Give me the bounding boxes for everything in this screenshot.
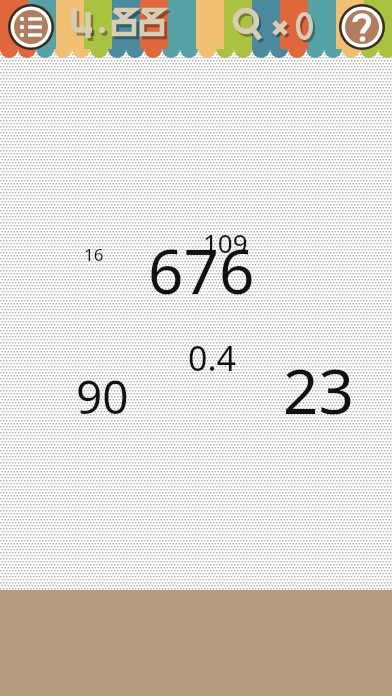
button[interactable]: 0.4 <box>188 335 237 381</box>
button[interactable]: Help <box>337 2 387 52</box>
staticText: 0.4 <box>188 335 237 381</box>
button[interactable]: Menu <box>6 2 56 52</box>
staticText: 676 <box>148 228 255 312</box>
staticText: 109 <box>203 225 248 260</box>
button[interactable]: Score <box>68 4 178 48</box>
button[interactable]: 90 <box>76 365 129 428</box>
button[interactable]: 16 <box>84 243 104 266</box>
button[interactable]: 109 <box>203 225 248 260</box>
staticText: 16 <box>84 243 104 266</box>
button[interactable]: 676 <box>148 228 255 312</box>
button[interactable]: 23 <box>283 348 354 432</box>
staticText: 23 <box>283 348 354 432</box>
staticText: 90 <box>76 365 129 428</box>
button[interactable]: Search count <box>232 6 328 46</box>
